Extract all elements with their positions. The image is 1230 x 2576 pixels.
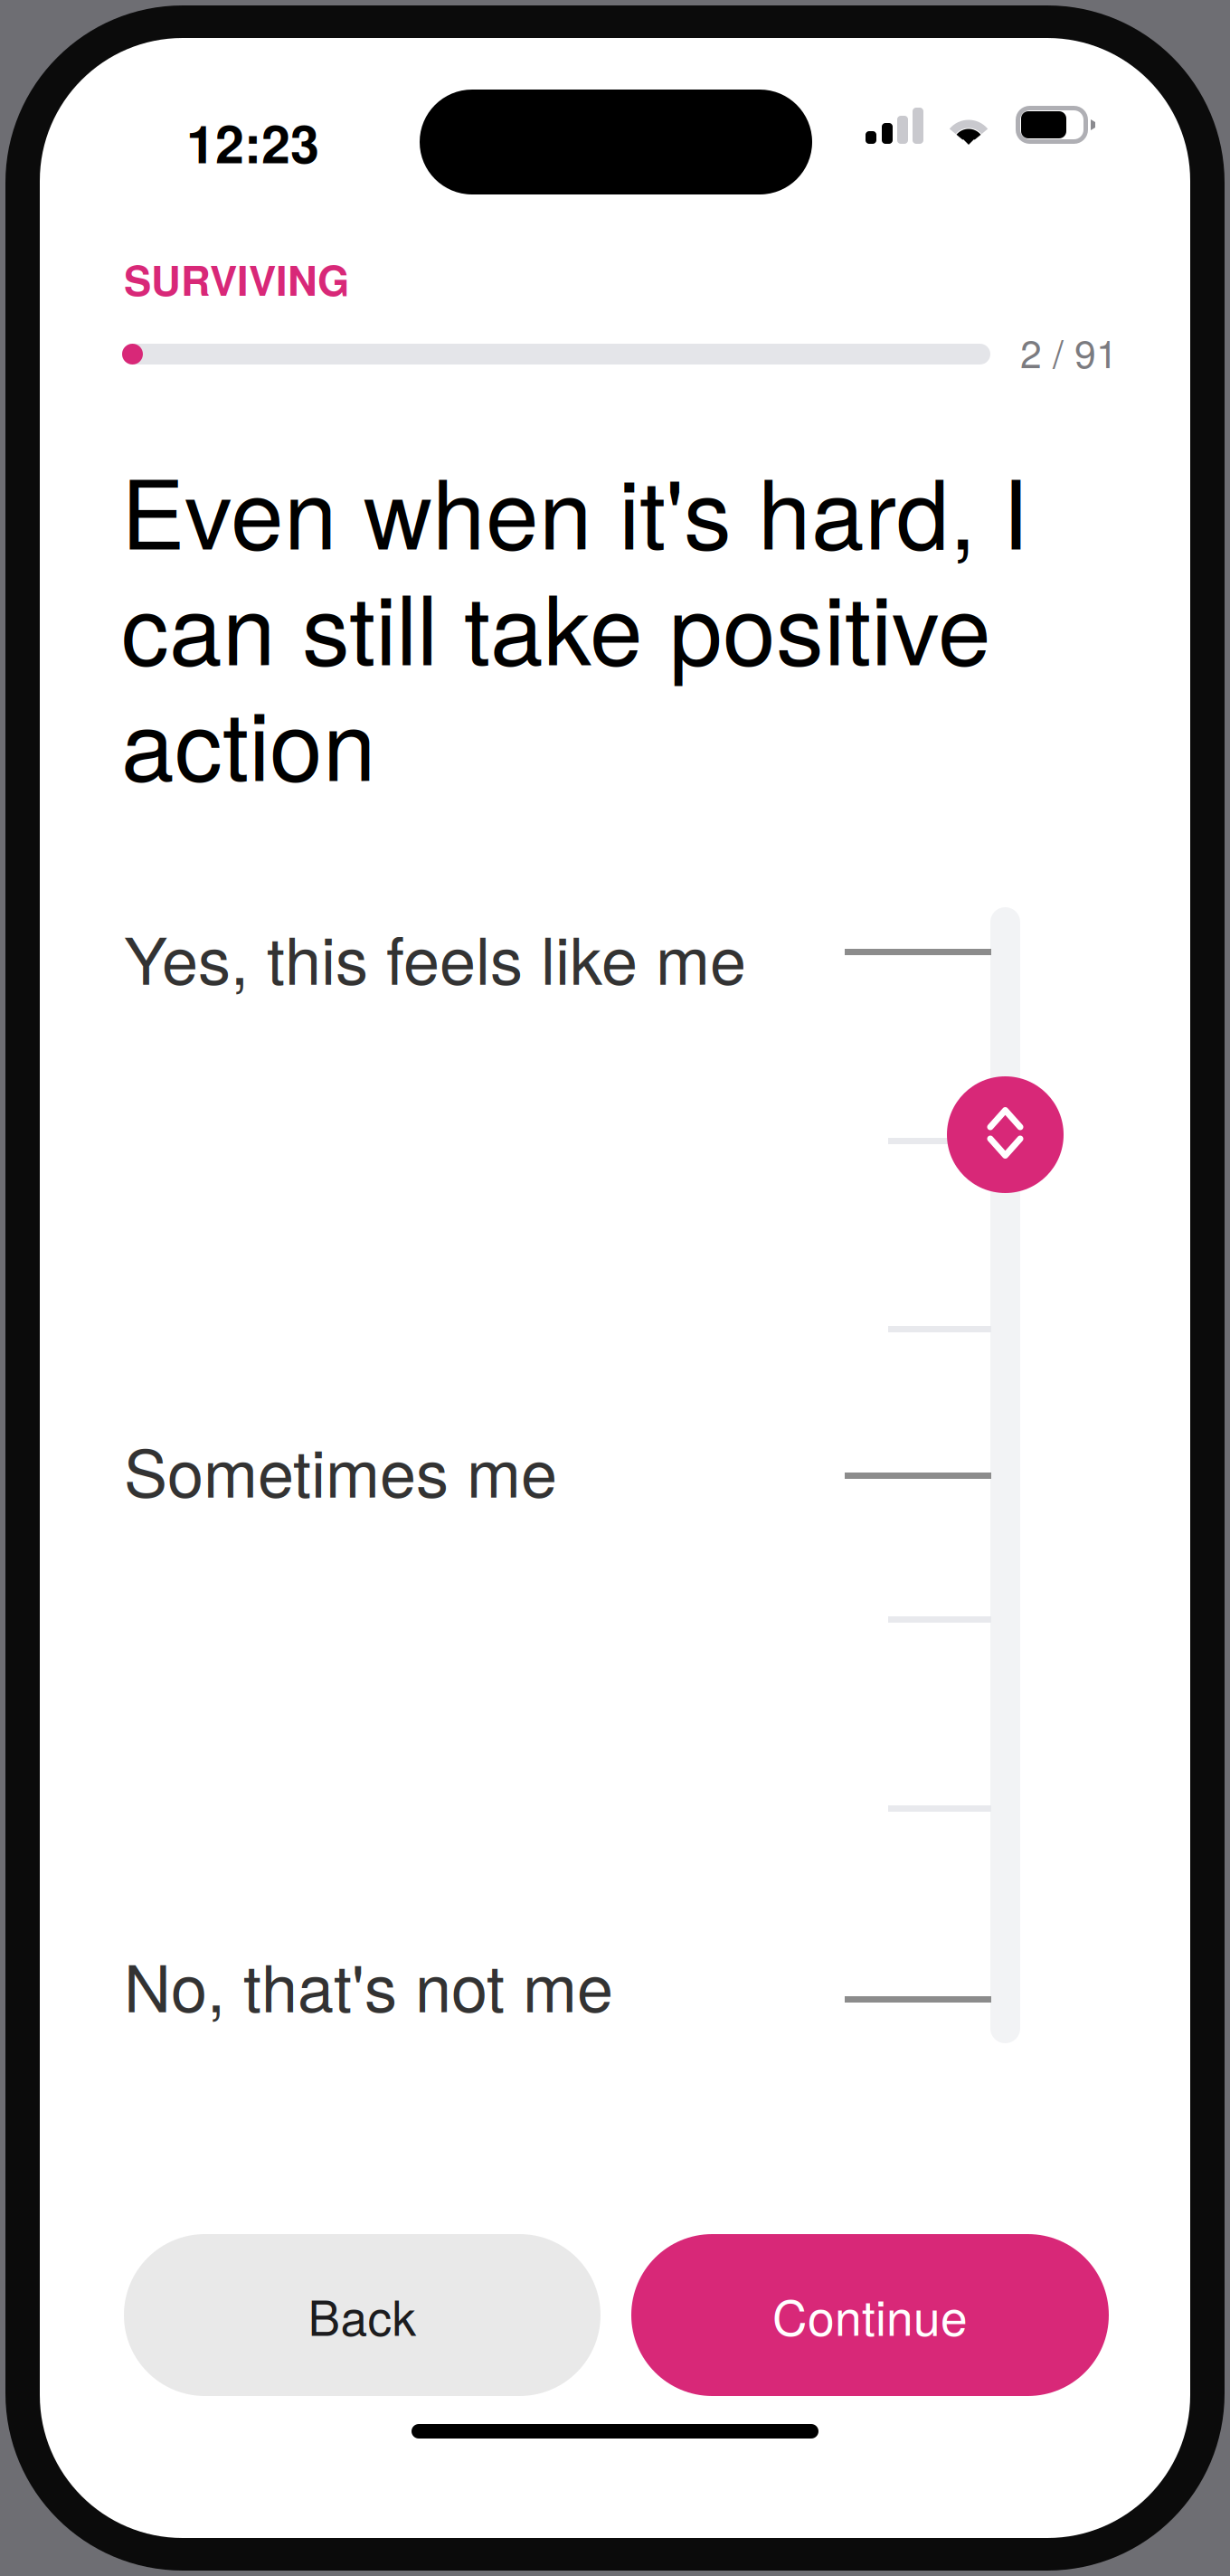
button[interactable]: Back [124, 2234, 601, 2396]
staticText: Back [308, 2281, 416, 2350]
staticText: 12:23 [186, 105, 319, 179]
staticText: Even when it's hard, I [121, 440, 1028, 577]
staticText: 2 / 91 [1020, 324, 1118, 379]
staticText: action [121, 672, 376, 808]
staticText: Continue [772, 2281, 968, 2350]
staticText: No, that's not me [124, 1937, 613, 2031]
staticText: Sometimes me [124, 1423, 557, 1516]
button[interactable]: Continue [631, 2234, 1109, 2396]
staticText: Yes, this feels like me [124, 910, 746, 1003]
staticText: SURVIVING [124, 250, 349, 308]
staticText: can still take positive [121, 556, 991, 692]
